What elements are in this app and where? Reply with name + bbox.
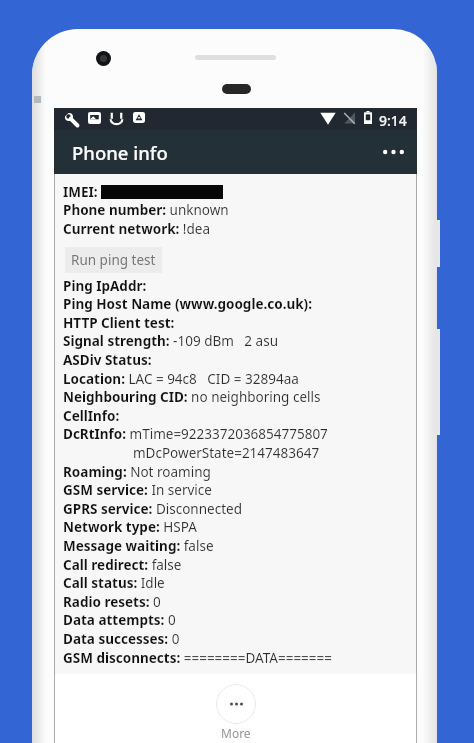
staticText: Roaming: Not roaming	[63, 463, 211, 481]
staticText: Network type: HSPA	[63, 518, 197, 536]
staticText: Run ping test	[71, 251, 156, 269]
staticText: Radio resets: 0	[63, 593, 161, 611]
staticText: More	[221, 725, 251, 741]
staticText: Phone number: unknown	[63, 201, 229, 219]
staticText: Call redirect: false	[63, 556, 182, 574]
staticText: Ping Host Name (www.google.co.uk):	[63, 295, 312, 313]
staticText: Ping IpAddr:	[63, 277, 147, 295]
staticText: HTTP Client test:	[63, 314, 175, 332]
staticText: Phone info	[72, 140, 168, 165]
staticText: Location: LAC = 94c8 CID = 32894aa	[63, 370, 299, 388]
staticText: mDcPowerState=2147483647	[133, 444, 320, 462]
staticText: CellInfo:	[63, 407, 120, 425]
staticText: Call status: Idle	[63, 574, 165, 592]
staticText: Data successes: 0	[63, 630, 180, 648]
staticText: GSM disconnects: ========DATA=======	[63, 649, 333, 667]
staticText: 9:14	[379, 111, 407, 130]
staticText: IMEI:	[63, 183, 98, 201]
staticText: Data attempts: 0	[63, 611, 176, 629]
button[interactable]: More	[216, 684, 256, 741]
staticText: GSM service: In service	[63, 481, 212, 499]
button[interactable]: Run ping test	[65, 247, 162, 273]
staticText: Signal strength: -109 dBm 2 asu	[63, 332, 278, 350]
staticText: Current network: !dea	[63, 220, 210, 238]
staticText: GPRS service: Disconnected	[63, 500, 242, 518]
staticText: Message waiting: false	[63, 537, 214, 555]
staticText: Neighbouring CID: no neighboring cells	[63, 388, 321, 406]
staticText: DcRtInfo: mTime=9223372036854775807	[63, 425, 328, 443]
button[interactable]: Phone info	[54, 130, 417, 174]
staticText: ASDiv Status:	[63, 351, 152, 369]
button[interactable]: More options	[373, 130, 413, 174]
